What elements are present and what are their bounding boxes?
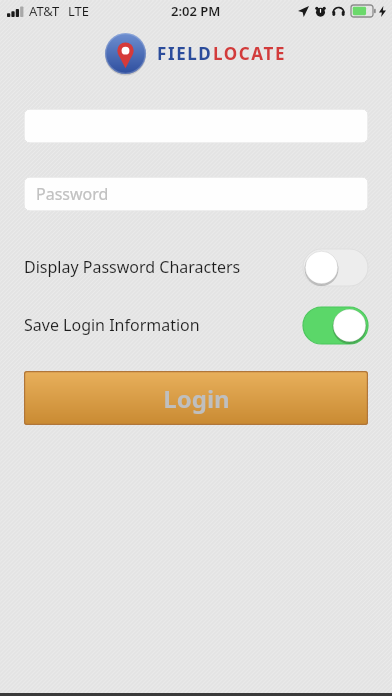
button[interactable]: Password <box>24 177 368 211</box>
button[interactable]: Login <box>24 371 368 425</box>
staticText: FIELD <box>157 42 213 65</box>
button[interactable] <box>24 109 368 143</box>
staticText: LOCATE <box>213 42 287 65</box>
staticText: Display Password Characters <box>24 256 241 278</box>
staticText: LTE <box>68 2 90 20</box>
button[interactable]: Display Password Characters <box>0 248 392 286</box>
button[interactable]: Save Login Information <box>0 306 392 344</box>
staticText: AT&T <box>29 2 60 20</box>
staticText: Login <box>163 382 230 415</box>
staticText: Save Login Information <box>24 314 200 336</box>
staticText: 2:02 PM <box>171 2 221 20</box>
button[interactable]: On <box>303 307 368 344</box>
staticText: Password <box>36 183 109 205</box>
button[interactable]: Off <box>303 249 368 286</box>
